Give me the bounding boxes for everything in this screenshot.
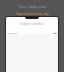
button[interactable]: [8, 33, 18, 34]
staticText: Your daily plan: [18, 4, 47, 9]
button[interactable]: Add: [53, 33, 57, 34]
staticText: Stay on track every day: [16, 12, 49, 16]
staticText: Today's schedule: [6, 22, 58, 26]
